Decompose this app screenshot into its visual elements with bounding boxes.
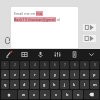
staticText: t [44, 72, 46, 77]
button[interactable]: s [10, 80, 19, 89]
button[interactable]: k [70, 80, 79, 89]
button[interactable]: t [40, 70, 49, 79]
staticText: 3 [24, 63, 26, 67]
staticText: p [93, 72, 96, 77]
staticText: 9 [84, 63, 86, 67]
staticText: 8 [74, 63, 76, 67]
staticText: 4 [34, 63, 36, 67]
staticText: 6 [54, 63, 56, 67]
button[interactable]: i [70, 70, 79, 79]
staticText: this [36, 11, 43, 16]
button[interactable]: Clipboard [16, 49, 32, 60]
staticText: c [44, 92, 46, 97]
staticText: j [64, 82, 65, 87]
button[interactable]: r [30, 70, 39, 79]
staticText: x [33, 92, 36, 97]
button[interactable]: x [29, 90, 39, 99]
button[interactable]: v [51, 90, 61, 99]
button[interactable]: g [40, 80, 49, 89]
button[interactable]: Voice input [32, 49, 49, 60]
button[interactable]: Attach [3, 36, 12, 45]
button[interactable]: 4 [30, 61, 39, 69]
button[interactable]: u [60, 70, 69, 79]
button[interactable]: 1 [1, 61, 9, 69]
button[interactable]: q [1, 80, 9, 89]
staticText: 0 [94, 63, 96, 67]
button[interactable]: 6 [50, 61, 59, 69]
staticText: f [34, 82, 36, 87]
staticText: o [83, 72, 86, 77]
staticText: Email me on [14, 11, 36, 16]
button[interactable]: Settings [49, 49, 66, 60]
staticText: 5 [44, 63, 46, 67]
button[interactable]: Backspace [84, 90, 99, 99]
staticText: r [34, 72, 36, 77]
button[interactable]: 0 [90, 61, 99, 69]
button[interactable]: 5 [40, 61, 49, 69]
staticText: g [43, 82, 46, 87]
button[interactable]: 8 [70, 61, 79, 69]
button[interactable]: j [60, 80, 69, 89]
button[interactable]: w [18, 90, 28, 99]
staticText: i [74, 72, 75, 77]
button[interactable]: More [83, 49, 100, 60]
button[interactable]: 7 [60, 61, 69, 69]
staticText: 7 [64, 63, 66, 67]
staticText: s [14, 82, 16, 87]
staticText: k [73, 82, 76, 87]
staticText: q [4, 82, 7, 87]
button[interactable]: o [80, 70, 89, 79]
button[interactable]: m [90, 80, 99, 89]
staticText: 2 [14, 63, 16, 67]
button[interactable]: p [90, 70, 99, 79]
staticText: 1 [4, 63, 6, 67]
staticText: y [54, 72, 56, 77]
staticText: l [84, 82, 85, 87]
staticText: Back1 5 thursian@gmail [14, 17, 56, 22]
button[interactable]: 2 [10, 61, 19, 69]
staticText: n [77, 92, 80, 97]
staticText: w [22, 92, 25, 97]
staticText: h [53, 82, 56, 87]
button[interactable]: e [20, 70, 29, 79]
staticText: u [63, 72, 66, 77]
button[interactable]: Email me on [11, 7, 78, 48]
button[interactable]: z [10, 70, 19, 79]
button[interactable]: c [40, 90, 50, 99]
staticText: m [93, 82, 97, 87]
button[interactable]: Shift [1, 90, 17, 99]
staticText: e [23, 72, 26, 77]
button[interactable]: f [30, 80, 39, 89]
button[interactable]: Handwriting [0, 49, 16, 60]
button[interactable]: l [80, 80, 89, 89]
button[interactable]: Stickers [66, 49, 83, 60]
button[interactable]: d [20, 80, 29, 89]
button[interactable]: a [1, 70, 9, 79]
staticText: b [66, 92, 69, 97]
button[interactable]: b [62, 90, 72, 99]
staticText: .nl [56, 17, 61, 22]
button[interactable]: y [50, 70, 59, 79]
staticText: a [4, 72, 7, 77]
button[interactable]: Options [82, 34, 97, 43]
button[interactable]: n [73, 90, 83, 99]
staticText: v [55, 92, 57, 97]
button[interactable]: 3 [20, 61, 29, 69]
staticText: d [23, 82, 26, 87]
button[interactable]: 9 [80, 61, 89, 69]
button[interactable]: h [50, 80, 59, 89]
staticText: z [14, 72, 16, 77]
button[interactable]: Send [82, 23, 97, 32]
